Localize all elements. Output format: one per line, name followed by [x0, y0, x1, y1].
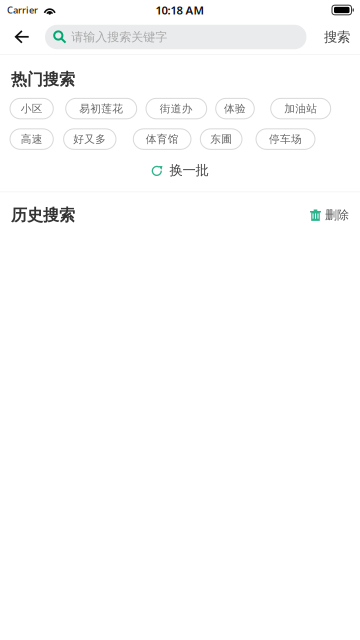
staticText: 停车场 [269, 133, 302, 146]
staticText: 加油站 [284, 102, 317, 115]
button[interactable]: 体育馆 [133, 129, 191, 149]
staticText: 10:18 AM [155, 2, 204, 18]
staticText: 高速 [21, 133, 43, 146]
button[interactable]: 好又多 [64, 129, 116, 149]
staticText: 历史搜索 [11, 205, 75, 225]
button[interactable]: Back [7, 23, 37, 51]
staticText: 易初莲花 [79, 102, 123, 115]
staticText: 小区 [21, 102, 43, 115]
button[interactable]: 删除 [310, 208, 349, 222]
staticText: Carrier [7, 4, 38, 16]
button[interactable]: 高速 [10, 129, 53, 149]
button[interactable]: 易初莲花 [66, 98, 137, 119]
staticText: 街道办 [160, 102, 193, 115]
button[interactable]: 东圃 [200, 129, 242, 149]
staticText: 东圃 [210, 133, 232, 146]
staticText: 热门搜索 [11, 70, 75, 89]
staticText: 体验 [224, 102, 246, 115]
staticText: 体育馆 [146, 133, 179, 146]
button[interactable]: 搜索 [324, 29, 350, 45]
staticText: 请输入搜索关键字 [71, 30, 167, 44]
staticText: 删除 [325, 208, 349, 222]
button[interactable]: 请输入搜索关键字 [45, 25, 306, 49]
button[interactable]: 街道办 [146, 98, 207, 119]
button[interactable]: 体验 [216, 98, 254, 119]
staticText: 搜索 [324, 29, 350, 45]
button[interactable]: 小区 [10, 98, 53, 119]
button[interactable]: 换一批 [151, 162, 209, 178]
staticText: 好又多 [73, 133, 106, 146]
staticText: 换一批 [170, 162, 209, 179]
button[interactable]: 停车场 [256, 129, 315, 149]
button[interactable]: 加油站 [271, 98, 331, 119]
